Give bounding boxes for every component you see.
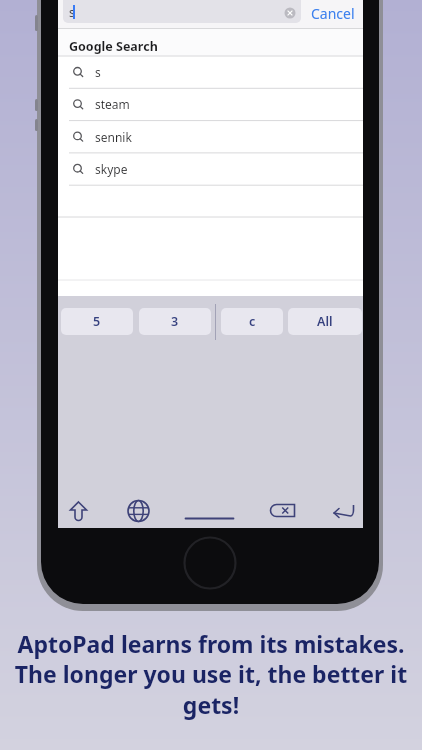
button[interactable]: steam xyxy=(58,88,363,120)
staticText: 3 xyxy=(171,313,179,330)
staticText: Google Search xyxy=(69,38,158,55)
staticText: 5 xyxy=(93,313,101,330)
staticText: c xyxy=(249,313,256,330)
button[interactable]: 3 xyxy=(139,308,211,335)
staticText: s xyxy=(95,64,101,80)
button[interactable]: All xyxy=(288,308,362,335)
staticText: AptoPad learns from its mistakes. The lo… xyxy=(0,628,422,721)
button[interactable]: c xyxy=(221,308,283,335)
staticText: skype xyxy=(95,161,128,177)
button[interactable]: s xyxy=(58,56,363,88)
staticText: s xyxy=(69,4,75,20)
staticText: Cancel xyxy=(311,4,355,23)
staticText: sennik xyxy=(95,129,132,145)
button[interactable]: Cancel xyxy=(310,3,356,23)
button[interactable]: 5 xyxy=(61,308,133,335)
button[interactable]: skype xyxy=(58,153,363,185)
button[interactable]: sennik xyxy=(58,121,363,153)
staticText: steam xyxy=(95,96,130,112)
staticText: All xyxy=(317,313,333,330)
